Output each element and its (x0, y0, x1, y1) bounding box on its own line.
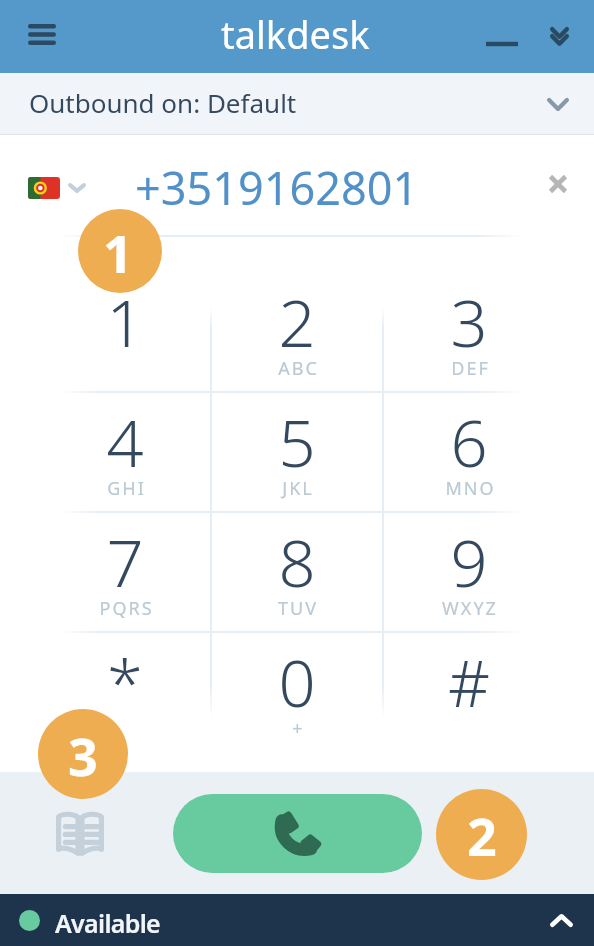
button[interactable]: 2 (211, 272, 383, 392)
staticText: TUV (278, 596, 318, 621)
button[interactable]: Available (0, 894, 594, 946)
button[interactable]: # (383, 632, 555, 752)
button[interactable]: 9 (383, 512, 555, 632)
staticText: 3 (450, 278, 488, 367)
staticText: # (448, 638, 490, 727)
button[interactable]: 6 (383, 392, 555, 512)
staticText: ABC (278, 356, 319, 381)
staticText: 8 (278, 518, 316, 607)
button[interactable]: 5 (211, 392, 383, 512)
button[interactable]: 8 (211, 512, 383, 632)
button[interactable]: 4 (39, 392, 211, 512)
staticText: PQRS (99, 596, 154, 621)
button[interactable]: Outbound on: Default (0, 73, 594, 134)
button[interactable]: * (39, 632, 211, 752)
staticText: 9 (450, 518, 488, 607)
staticText: JKL (282, 476, 314, 501)
staticText: +3519162801 (135, 157, 419, 218)
staticText: + (292, 716, 305, 741)
staticText: DEF (451, 356, 490, 381)
button[interactable]: Country code (28, 177, 86, 199)
staticText: 7 (106, 518, 144, 607)
staticText: Available (55, 906, 160, 940)
button[interactable]: Clear (537, 163, 579, 205)
button[interactable]: Call (173, 794, 422, 873)
staticText: 5 (278, 398, 316, 487)
staticText: 2 (467, 800, 497, 871)
staticText: * (107, 638, 143, 727)
button[interactable]: 0 (211, 632, 383, 752)
staticText: 1 (103, 217, 133, 288)
staticText: 0 (278, 638, 316, 727)
button[interactable]: 7 (39, 512, 211, 632)
button[interactable]: Contacts (44, 797, 116, 869)
button[interactable]: Collapse (535, 12, 583, 60)
button[interactable]: 1 (39, 272, 211, 392)
staticText: WXYZ (442, 596, 498, 621)
staticText: 6 (450, 398, 488, 487)
button[interactable]: 3 (383, 272, 555, 392)
staticText: 2 (278, 278, 316, 367)
staticText: 3 (68, 720, 98, 791)
button[interactable]: Minimize (478, 20, 526, 68)
staticText: talkdesk (221, 8, 370, 60)
staticText: 4 (106, 398, 144, 487)
staticText: GHI (107, 476, 146, 501)
staticText: 1 (106, 278, 144, 367)
staticText: MNO (445, 476, 496, 501)
button[interactable]: Menu (14, 6, 70, 62)
button[interactable]: Expand (543, 902, 579, 938)
staticText: Outbound on: Default (29, 85, 297, 120)
